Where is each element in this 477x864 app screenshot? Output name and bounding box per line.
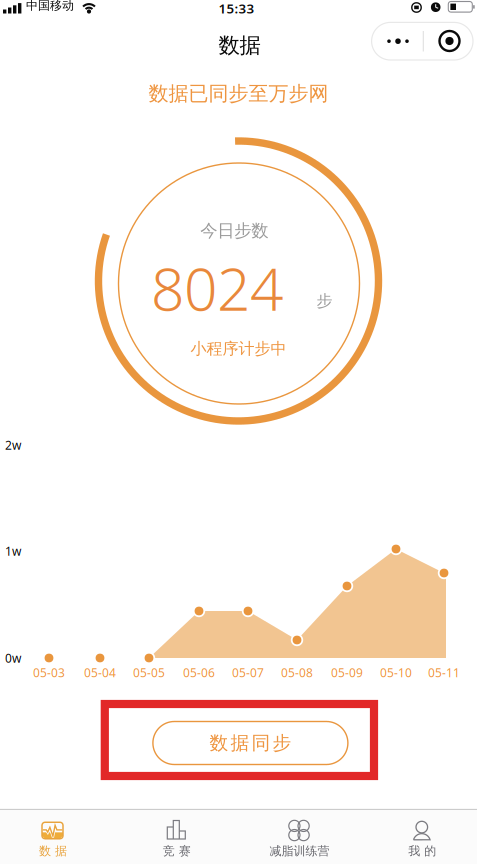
staticText: 中国移动 [26,0,74,13]
staticText: 15:33 [218,0,254,17]
staticText: 05-10 [380,664,412,680]
staticText: 05-08 [281,664,313,680]
button[interactable]: 我 的 [392,809,451,863]
staticText: 数据同步 [209,731,291,754]
staticText: 今日步数 [200,220,268,241]
button[interactable] [427,22,471,60]
staticText: 05-07 [232,664,264,680]
staticText: 减脂训练营 [269,844,329,858]
button[interactable]: 竞 赛 [147,809,206,863]
button[interactable]: 减脂训练营 [269,809,328,863]
staticText: 05-05 [133,664,165,680]
staticText: 05-11 [428,664,460,680]
staticText: 05-09 [331,664,363,680]
staticText: 数据已同步至万步网 [148,81,328,106]
staticText: 数据 [218,32,260,59]
staticText: 8024 [151,249,283,327]
button[interactable]: 数据同步 [153,721,348,764]
staticText: 1w [5,543,21,559]
staticText: 竞 赛 [163,844,191,858]
button[interactable]: 数 据 [23,809,82,863]
staticText: 步 [316,291,332,311]
staticText: 05-03 [33,664,65,680]
staticText: 小程序计步中 [191,339,287,359]
staticText: 05-06 [183,664,215,680]
staticText: 2w [5,437,21,453]
staticText: 数 据 [39,844,67,858]
staticText: 0w [5,650,21,666]
staticText: 我 的 [408,844,436,858]
staticText: 05-04 [84,664,116,680]
button[interactable] [376,22,420,60]
